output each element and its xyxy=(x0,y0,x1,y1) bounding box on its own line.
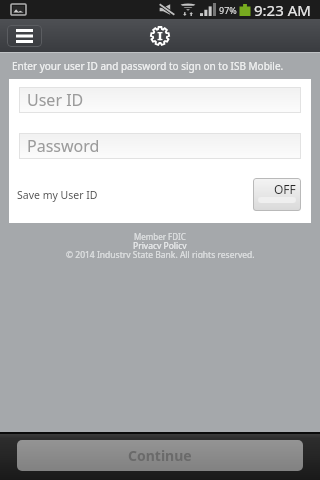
staticText: © 2014 Industry State Bank. All rights r… xyxy=(66,249,255,258)
staticText: Password xyxy=(27,135,100,157)
staticText: Enter your user ID and password to sign … xyxy=(12,59,284,73)
staticText: 97% xyxy=(219,4,237,16)
button[interactable]: Privacy Policy xyxy=(133,240,187,249)
button[interactable]: Continue xyxy=(17,440,303,471)
staticText: User ID xyxy=(27,89,84,111)
button[interactable]: Menu xyxy=(7,25,42,47)
staticText: 9:23 AM xyxy=(254,0,311,19)
staticText: Save my User ID xyxy=(17,188,98,202)
staticText: OFF xyxy=(274,181,296,197)
staticText: Continue xyxy=(128,446,192,465)
button[interactable]: OFF xyxy=(253,178,301,211)
staticText: Member FDIC xyxy=(134,231,186,240)
